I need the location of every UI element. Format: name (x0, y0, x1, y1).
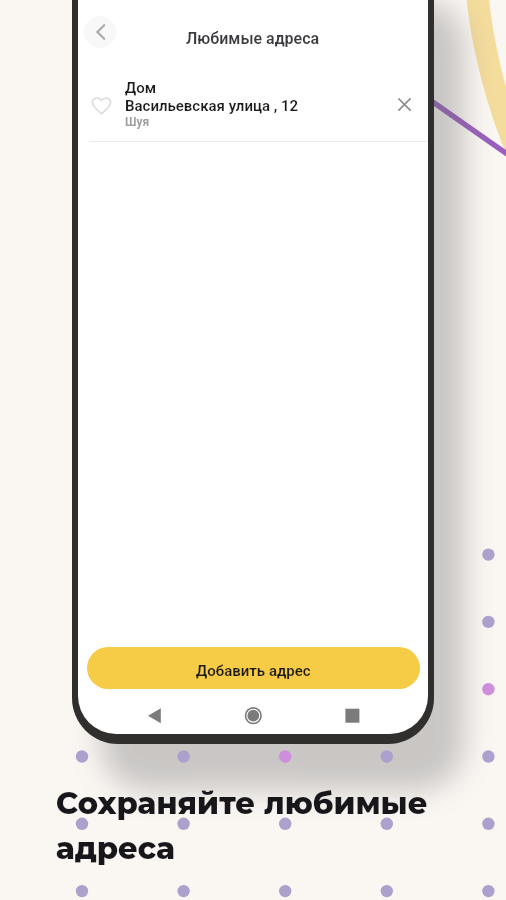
staticText: Дом (125, 79, 157, 97)
staticText: Сохраняйте любимые (56, 784, 428, 821)
button[interactable]: Добавить адрес (87, 647, 420, 689)
staticText: Васильевская улица , 12 (125, 97, 299, 115)
staticText: Добавить адрес (196, 662, 311, 680)
button[interactable]: Remove (380, 80, 428, 128)
button[interactable]: Дом (78, 63, 428, 145)
button[interactable]: Back (84, 16, 116, 48)
staticText: Любимые адреса (186, 29, 320, 48)
button[interactable]: System navigation (78, 689, 428, 727)
staticText: Шуя (125, 115, 150, 129)
staticText: адреса (56, 829, 175, 866)
